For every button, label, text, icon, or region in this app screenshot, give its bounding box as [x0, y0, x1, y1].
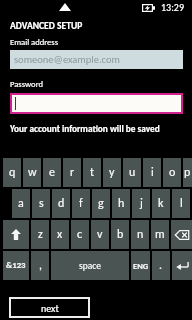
staticText: space [79, 260, 102, 272]
staticText: Email address [10, 37, 59, 47]
staticText: ADVANCED SETUP [10, 20, 83, 32]
button[interactable]: f [72, 189, 90, 218]
button[interactable]: next [9, 297, 90, 318]
button[interactable]: l [172, 189, 190, 218]
staticText: i [151, 165, 154, 180]
staticText: Your account information will be saved [10, 123, 160, 134]
button[interactable]: h [112, 189, 130, 218]
button[interactable]: p [183, 158, 192, 187]
button[interactable]: w [23, 158, 41, 187]
button[interactable]: g [92, 189, 110, 218]
staticText: q [9, 165, 16, 180]
button[interactable]: Shift [3, 220, 29, 249]
staticText: f [79, 196, 83, 211]
staticText: ENG [133, 261, 149, 271]
button[interactable]: i [143, 158, 161, 187]
button[interactable]: t [83, 158, 101, 187]
button[interactable]: c [71, 220, 89, 249]
staticText: l [180, 196, 183, 211]
staticText: p [184, 165, 191, 180]
button[interactable]: &123 [3, 251, 29, 280]
button[interactable]: o [163, 158, 181, 187]
button[interactable]: e [43, 158, 61, 187]
button[interactable]: x [51, 220, 69, 249]
button[interactable]: Backspace [171, 220, 192, 249]
staticText: n [137, 227, 144, 242]
staticText: u [129, 165, 136, 180]
button[interactable]: k [152, 189, 170, 218]
staticText: , [39, 258, 42, 273]
button[interactable]: j [132, 189, 150, 218]
staticText: 13:29 [161, 1, 184, 13]
button[interactable]: space [51, 251, 129, 280]
staticText: j [140, 196, 143, 211]
staticText: b [117, 227, 124, 242]
button[interactable]: u [123, 158, 141, 187]
button[interactable]: . [152, 251, 170, 280]
staticText: . [159, 258, 163, 273]
button[interactable]: b [111, 220, 129, 249]
button[interactable] [12, 95, 181, 112]
button[interactable]: , [31, 251, 49, 280]
staticText: o [169, 165, 176, 180]
staticText: r [70, 165, 75, 180]
button[interactable]: r [63, 158, 81, 187]
staticText: &123 [6, 260, 26, 271]
button[interactable]: m [151, 220, 169, 249]
staticText: m [155, 227, 165, 242]
staticText: k [158, 196, 164, 211]
button[interactable]: d [52, 189, 70, 218]
staticText: v [97, 227, 103, 242]
button[interactable]: ENG [131, 251, 150, 280]
button[interactable]: s [32, 189, 50, 218]
staticText: y [109, 165, 115, 180]
staticText: a [18, 196, 24, 211]
staticText: e [49, 165, 55, 180]
staticText: next [41, 302, 59, 314]
staticText: d [58, 196, 65, 211]
staticText: Password [10, 79, 44, 89]
button[interactable]: v [91, 220, 109, 249]
button[interactable]: a [12, 189, 30, 218]
button[interactable]: y [103, 158, 121, 187]
staticText: g [98, 196, 104, 211]
button[interactable]: q [3, 158, 21, 187]
button[interactable]: someone@example.com [10, 50, 183, 69]
staticText: x [57, 227, 63, 242]
staticText: c [77, 227, 83, 242]
staticText: w [28, 165, 37, 180]
staticText: h [118, 196, 125, 211]
staticText: s [39, 196, 44, 211]
button[interactable]: z [31, 220, 49, 249]
button[interactable]: Enter [172, 251, 192, 280]
button[interactable]: n [131, 220, 149, 249]
staticText: z [38, 227, 43, 242]
staticText: someone@example.com [14, 53, 120, 66]
staticText: t [90, 165, 95, 180]
